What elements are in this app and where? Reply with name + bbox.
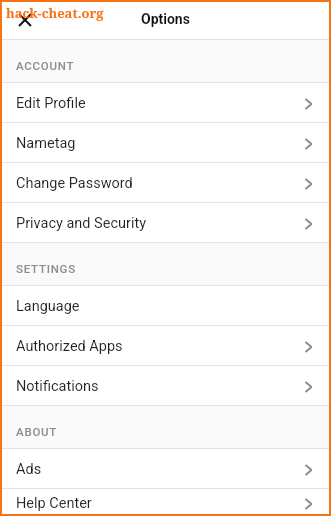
button[interactable]: Language bbox=[0, 286, 331, 326]
staticText: SETTINGS bbox=[16, 262, 76, 275]
staticText: ABOUT bbox=[16, 425, 58, 438]
button[interactable]: Ads bbox=[0, 449, 331, 489]
staticText: ACCOUNT bbox=[16, 59, 75, 72]
button[interactable]: Authorized Apps bbox=[0, 326, 331, 366]
button[interactable]: Privacy and Security bbox=[0, 203, 331, 243]
staticText: Options bbox=[141, 11, 190, 27]
staticText: Nametag bbox=[16, 135, 76, 152]
staticText: Authorized Apps bbox=[16, 338, 123, 355]
button[interactable]: Change Password bbox=[0, 163, 331, 203]
staticText: Change Password bbox=[16, 175, 133, 192]
staticText: hack-cheat.org bbox=[6, 4, 104, 22]
staticText: Notifications bbox=[16, 378, 99, 395]
staticText: Ads bbox=[16, 461, 42, 478]
staticText: Help Center bbox=[16, 495, 92, 512]
button[interactable]: Help Center bbox=[0, 489, 331, 516]
button[interactable]: Edit Profile bbox=[0, 83, 331, 123]
staticText: Privacy and Security bbox=[16, 215, 147, 232]
button[interactable]: Nametag bbox=[0, 123, 331, 163]
staticText: Language bbox=[16, 298, 80, 315]
button[interactable]: Notifications bbox=[0, 366, 331, 406]
staticText: Edit Profile bbox=[16, 95, 86, 112]
button[interactable]: Close bbox=[12, 7, 38, 33]
